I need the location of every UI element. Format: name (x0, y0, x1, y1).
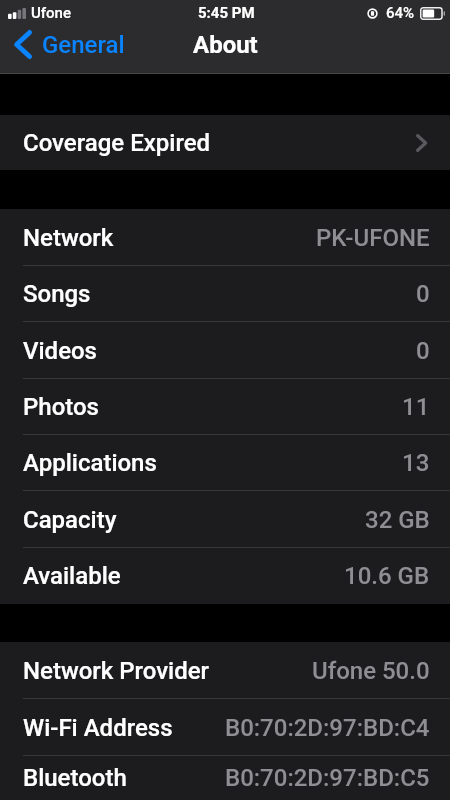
button[interactable]: Available (0, 548, 450, 604)
staticText: B0:70:2D:97:BD:C4 (225, 714, 430, 742)
staticText: Songs (23, 280, 91, 308)
staticText: Coverage Expired (23, 129, 211, 157)
staticText: About (193, 31, 258, 59)
button[interactable]: Applications (0, 435, 450, 491)
staticText: Available (23, 562, 121, 590)
staticText: B0:70:2D:97:BD:C5 (225, 764, 430, 792)
staticText: Photos (23, 393, 99, 421)
button[interactable]: Songs (0, 266, 450, 322)
staticText: General (42, 31, 125, 59)
button[interactable]: Capacity (0, 491, 450, 548)
button[interactable]: Back to General (0, 27, 137, 62)
staticText: 5:45 PM (198, 4, 255, 22)
button[interactable]: Network (0, 209, 450, 266)
staticText: Applications (23, 449, 157, 477)
staticText: Videos (23, 337, 97, 365)
staticText: Capacity (23, 506, 117, 534)
staticText: Wi-Fi Address (23, 714, 173, 742)
button[interactable]: Wi-Fi Address (0, 699, 450, 756)
staticText: Bluetooth (23, 764, 127, 792)
staticText: 64% (386, 4, 415, 22)
staticText: 0 (416, 280, 430, 308)
staticText: Network Provider (23, 657, 210, 685)
staticText: Ufone 50.0 (312, 657, 430, 685)
staticText: 0 (416, 337, 430, 365)
button[interactable]: Videos (0, 322, 450, 379)
staticText: 11 (402, 393, 430, 421)
staticText: Network (23, 224, 114, 252)
button[interactable]: Photos (0, 379, 450, 435)
staticText: Ufone (31, 4, 72, 22)
staticText: 32 GB (365, 506, 430, 534)
button[interactable]: Network Provider (0, 642, 450, 699)
button[interactable]: Bluetooth (0, 756, 450, 800)
staticText: PK-UFONE (316, 224, 430, 252)
button[interactable]: Coverage Expired (0, 115, 450, 170)
staticText: 10.6 GB (344, 562, 430, 590)
staticText: 13 (402, 449, 430, 477)
